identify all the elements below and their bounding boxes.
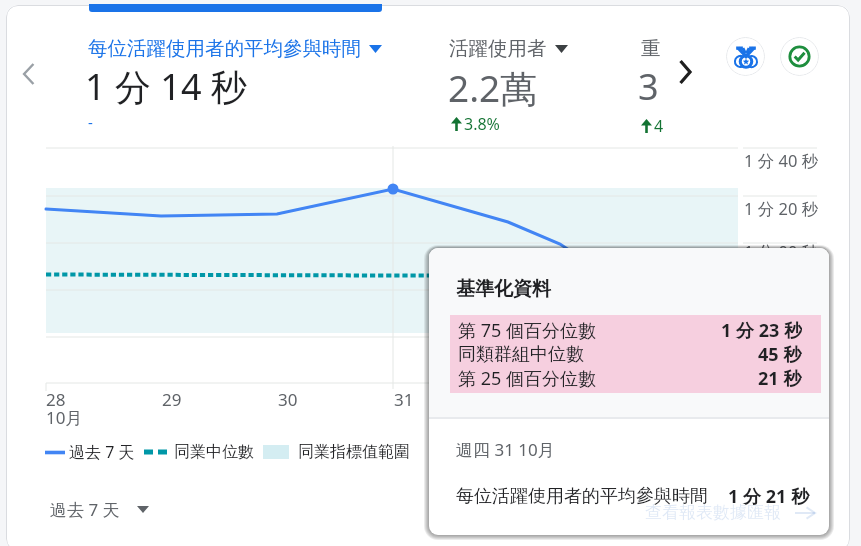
- staticText: 基準化資料: [456, 277, 551, 301]
- staticText: 同業指標值範圍: [298, 442, 410, 462]
- button[interactable]: Insights: [726, 37, 765, 76]
- staticText: 週四 31 10月: [456, 438, 555, 461]
- staticText: 1 分 14 秒: [85, 62, 247, 111]
- staticText: 每位活躍使用者的平均參與時間: [88, 36, 361, 61]
- button[interactable]: 查看報表數據匯報: [645, 502, 816, 523]
- staticText: 1 分 40 秒: [744, 149, 819, 172]
- staticText: 同業中位數: [174, 442, 254, 462]
- staticText: 30: [278, 388, 298, 411]
- staticText: 29: [162, 388, 182, 411]
- staticText: 21 秒: [758, 366, 802, 390]
- staticText: 2.2萬: [448, 62, 538, 113]
- staticText: 1 分 20 秒: [744, 197, 819, 220]
- staticText: 1 分 23 秒: [721, 318, 802, 342]
- staticText: 45 秒: [758, 342, 802, 366]
- button[interactable]: Next: [669, 56, 701, 88]
- staticText: 28: [46, 388, 66, 411]
- staticText: 1 分 21 秒: [728, 484, 809, 509]
- staticText: 3.8%: [464, 113, 500, 135]
- button[interactable]: 過去 7 天: [50, 498, 149, 521]
- staticText: 3: [638, 62, 659, 111]
- staticText: 第 75 個百分位數: [458, 318, 596, 342]
- staticText: 31: [394, 388, 414, 411]
- staticText: 10月: [46, 406, 83, 429]
- button[interactable]: Verified: [780, 37, 819, 76]
- button[interactable]: Previous: [13, 59, 43, 89]
- button[interactable]: 每位活躍使用者的平均參與時間: [88, 36, 382, 61]
- staticText: -: [88, 112, 93, 132]
- staticText: 重: [641, 36, 661, 61]
- staticText: 1 分 00 秒: [744, 240, 819, 263]
- button[interactable]: 活躍使用者: [449, 36, 568, 61]
- staticText: 過去 7 天: [50, 498, 120, 521]
- staticText: 第 25 個百分位數: [458, 366, 596, 390]
- staticText: 活躍使用者: [449, 36, 547, 61]
- staticText: 查看報表數據匯報: [645, 502, 781, 523]
- staticText: 4: [654, 115, 664, 137]
- staticText: 每位活躍使用者的平均參與時間: [456, 485, 708, 508]
- staticText: 過去 7 天: [69, 441, 135, 463]
- staticText: 同類群組中位數: [458, 343, 584, 366]
